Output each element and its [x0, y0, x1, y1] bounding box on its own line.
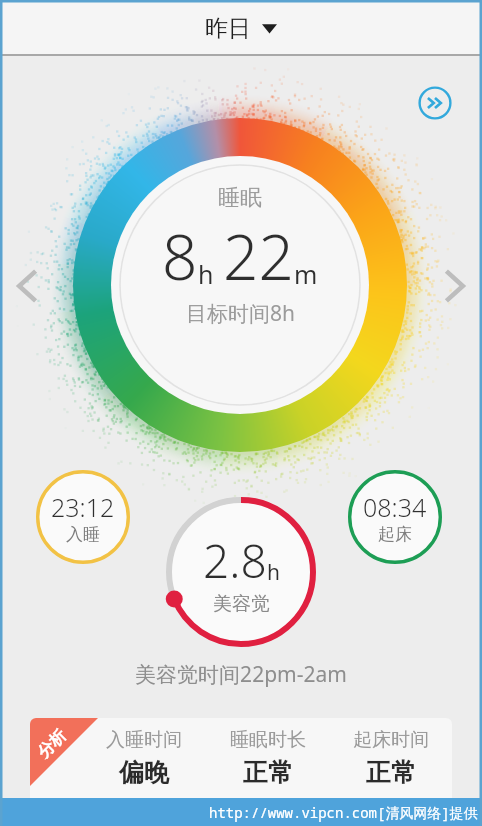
button[interactable]: 08:34: [348, 470, 442, 564]
staticText: 昨日: [205, 14, 251, 43]
staticText: h: [267, 558, 280, 587]
staticText: 08:34: [363, 490, 427, 524]
staticText: m: [294, 257, 318, 291]
staticText: 23:12: [51, 490, 115, 524]
button[interactable]: More details: [418, 86, 452, 120]
button[interactable]: Next day: [436, 255, 476, 317]
staticText: 起床时间: [353, 728, 429, 752]
staticText: 睡眠: [218, 184, 262, 212]
staticText: 分析: [34, 726, 70, 762]
staticText: 目标时间8h: [186, 299, 295, 328]
staticText: 2.8: [203, 529, 267, 592]
staticText: 8: [162, 214, 198, 298]
staticText: 22: [223, 214, 294, 298]
staticText: 美容觉: [213, 592, 270, 616]
staticText: 起床: [378, 524, 412, 545]
button[interactable]: 入睡时间: [82, 728, 206, 788]
staticText: 正常: [243, 757, 293, 788]
button[interactable]: 起床时间: [329, 728, 452, 788]
button[interactable]: 23:12: [36, 470, 130, 564]
staticText: h: [198, 257, 214, 291]
staticText: 偏晚: [119, 757, 169, 788]
staticText: 入睡: [66, 524, 100, 545]
button[interactable]: Previous day: [6, 255, 46, 317]
button[interactable]: 昨日: [0, 0, 482, 56]
button[interactable]: 睡眠时长: [206, 728, 329, 788]
staticText: 入睡时间: [106, 728, 182, 752]
button[interactable]: 入睡时间: [30, 718, 452, 808]
staticText: http://www.vipcn.com[清风网络]提供: [209, 803, 478, 822]
staticText: 美容觉时间22pm-2am: [135, 660, 347, 689]
staticText: 正常: [366, 757, 416, 788]
staticText: 睡眠时长: [230, 728, 306, 752]
button[interactable]: 2.8: [166, 497, 316, 647]
